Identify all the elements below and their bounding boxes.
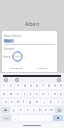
staticText: m [50, 108, 53, 112]
button[interactable]: l [55, 99, 61, 105]
staticText: w [10, 92, 13, 96]
staticText: t [30, 92, 32, 96]
staticText: u [42, 92, 44, 96]
button[interactable]: q [1, 91, 7, 97]
button[interactable]: GIF [15, 78, 19, 82]
staticText: z [36, 92, 38, 96]
button[interactable]: 3 [15, 83, 21, 89]
button[interactable]: p [58, 91, 63, 97]
button[interactable]: o [52, 91, 57, 97]
staticText: Albert [4, 39, 12, 43]
button[interactable]: v [31, 107, 36, 113]
staticText: - - [24, 55, 27, 59]
staticText: Albert [25, 21, 40, 28]
staticText: 1 [3, 84, 5, 88]
button[interactable]: k [48, 99, 54, 105]
button[interactable]: t [28, 91, 33, 97]
button[interactable]: w [8, 91, 14, 97]
staticText: 6 [36, 84, 38, 88]
staticText: Abbrechen [10, 66, 23, 69]
staticText: f [23, 100, 25, 104]
staticText: Startzeit [4, 47, 15, 51]
staticText: q [3, 92, 5, 96]
staticText: k [50, 100, 52, 104]
staticText: p [60, 92, 62, 96]
staticText: v [33, 108, 35, 112]
staticText: d [17, 100, 19, 104]
staticText: l [58, 100, 59, 104]
staticText: 0 [60, 84, 62, 88]
staticText: g [29, 100, 31, 104]
staticText: h [36, 100, 38, 104]
staticText: 5 [30, 84, 32, 88]
button[interactable]: Settings [57, 78, 61, 82]
staticText: o [54, 92, 56, 96]
staticText: 9 [54, 84, 56, 88]
button[interactable]: u [40, 91, 45, 97]
staticText: 8 [48, 84, 50, 88]
button[interactable]: Uhrzeit wählen [12, 51, 23, 62]
staticText: . [49, 116, 50, 120]
button[interactable]: g [27, 99, 33, 105]
button[interactable]: x [18, 107, 24, 113]
staticText: a [5, 100, 7, 104]
staticText: 2 [10, 84, 12, 88]
button[interactable]: . [46, 115, 52, 121]
button[interactable]: 5 [28, 83, 33, 89]
button[interactable]: f [21, 99, 26, 105]
staticText: c [27, 108, 29, 112]
button[interactable]: n [43, 107, 48, 113]
staticText: Heute [3, 55, 11, 59]
button[interactable]: 9 [52, 83, 57, 89]
button[interactable]: b [37, 107, 42, 113]
staticText: 09:00 [15, 55, 21, 58]
staticText: Neuer Termin [4, 34, 22, 38]
staticText: y [13, 108, 15, 112]
button[interactable]: j [41, 99, 47, 105]
button[interactable]: r [22, 91, 27, 97]
staticText: 3 [17, 84, 19, 88]
button[interactable]: 7 [40, 83, 45, 89]
staticText: e [17, 92, 19, 96]
staticText: 4 [24, 84, 26, 88]
button[interactable]: h [34, 99, 40, 105]
button[interactable]: d [15, 99, 20, 105]
button[interactable]: e [15, 91, 21, 97]
button[interactable]: Symbols [1, 115, 11, 121]
button[interactable]: s [9, 99, 14, 105]
staticText: Erstellen [37, 66, 48, 69]
button[interactable]: Abbrechen [9, 65, 24, 70]
staticText: 7 [42, 84, 44, 88]
button[interactable]: 0 [58, 83, 63, 89]
staticText: n [45, 108, 47, 112]
button[interactable]: , [12, 115, 18, 121]
button[interactable]: 6 [34, 83, 39, 89]
button[interactable]: Shift [1, 107, 10, 113]
button[interactable]: 4 [22, 83, 27, 89]
staticText: b [39, 108, 41, 112]
button[interactable]: 8 [46, 83, 51, 89]
button[interactable]: Enter [53, 115, 63, 121]
staticText: ?123 [4, 117, 9, 120]
button[interactable]: c [25, 107, 30, 113]
button[interactable]: a [3, 99, 8, 105]
staticText: , [15, 116, 16, 120]
button[interactable]: 1 [1, 83, 7, 89]
button[interactable]: 2 [8, 83, 14, 89]
staticText: i [48, 92, 49, 96]
button[interactable]: i [46, 91, 51, 97]
button[interactable]: Sticker [4, 78, 8, 82]
button[interactable]: Backspace [55, 107, 63, 113]
staticText: x [20, 108, 22, 112]
button[interactable]: z [34, 91, 39, 97]
button[interactable]: m [49, 107, 54, 113]
button[interactable]: Erstellen [36, 65, 49, 70]
staticText: r [24, 92, 26, 96]
staticText: s [11, 100, 13, 104]
staticText: j [44, 100, 45, 104]
button[interactable]: y [11, 107, 17, 113]
